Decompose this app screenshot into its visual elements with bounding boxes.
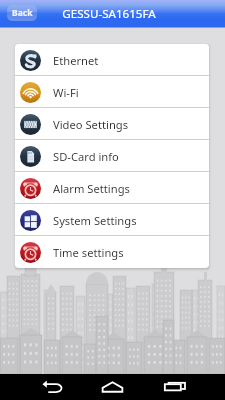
staticText: Time settings	[53, 245, 124, 260]
button[interactable]: Video Settings	[15, 108, 209, 140]
button[interactable]: Recent apps	[155, 375, 193, 399]
staticText: SD-Card info	[53, 149, 119, 164]
button[interactable]: Home	[93, 375, 131, 399]
staticText: System Settings	[53, 213, 137, 228]
button[interactable]: Ethernet	[15, 44, 209, 76]
staticText: Back	[12, 7, 33, 19]
staticText: Alarm Settings	[53, 181, 130, 196]
button[interactable]: Alarm Settings	[15, 172, 209, 204]
button[interactable]: Back	[7, 5, 37, 21]
staticText: Video Settings	[53, 117, 129, 132]
button[interactable]: Wi-Fi	[15, 76, 209, 108]
button[interactable]: System Settings	[15, 204, 209, 236]
staticText: Ethernet	[53, 53, 99, 68]
button[interactable]: Back	[33, 375, 71, 399]
staticText: Wi-Fi	[53, 85, 79, 100]
button[interactable]: Time settings	[15, 236, 209, 268]
staticText: GESSU-SA1615FA	[62, 6, 156, 22]
button[interactable]: SD-Card info	[15, 140, 209, 172]
